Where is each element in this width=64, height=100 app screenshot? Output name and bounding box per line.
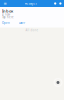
staticText: 4 new xyxy=(2,13,10,16)
staticText: Open xyxy=(2,21,10,25)
button[interactable]: More xyxy=(59,2,61,5)
staticText: Messages xyxy=(24,2,36,5)
button[interactable]: Later xyxy=(19,21,25,25)
button[interactable]: Open xyxy=(2,21,10,25)
button[interactable]: Menu xyxy=(2,1,7,6)
staticText: ≡ xyxy=(3,1,6,6)
staticText: Later xyxy=(19,21,25,25)
staticText: Tap here xyxy=(2,15,14,19)
staticText: Inbox xyxy=(2,8,13,13)
staticText: All done xyxy=(25,28,38,32)
button[interactable]: Compose xyxy=(53,78,62,87)
button[interactable]: Search xyxy=(54,2,56,5)
